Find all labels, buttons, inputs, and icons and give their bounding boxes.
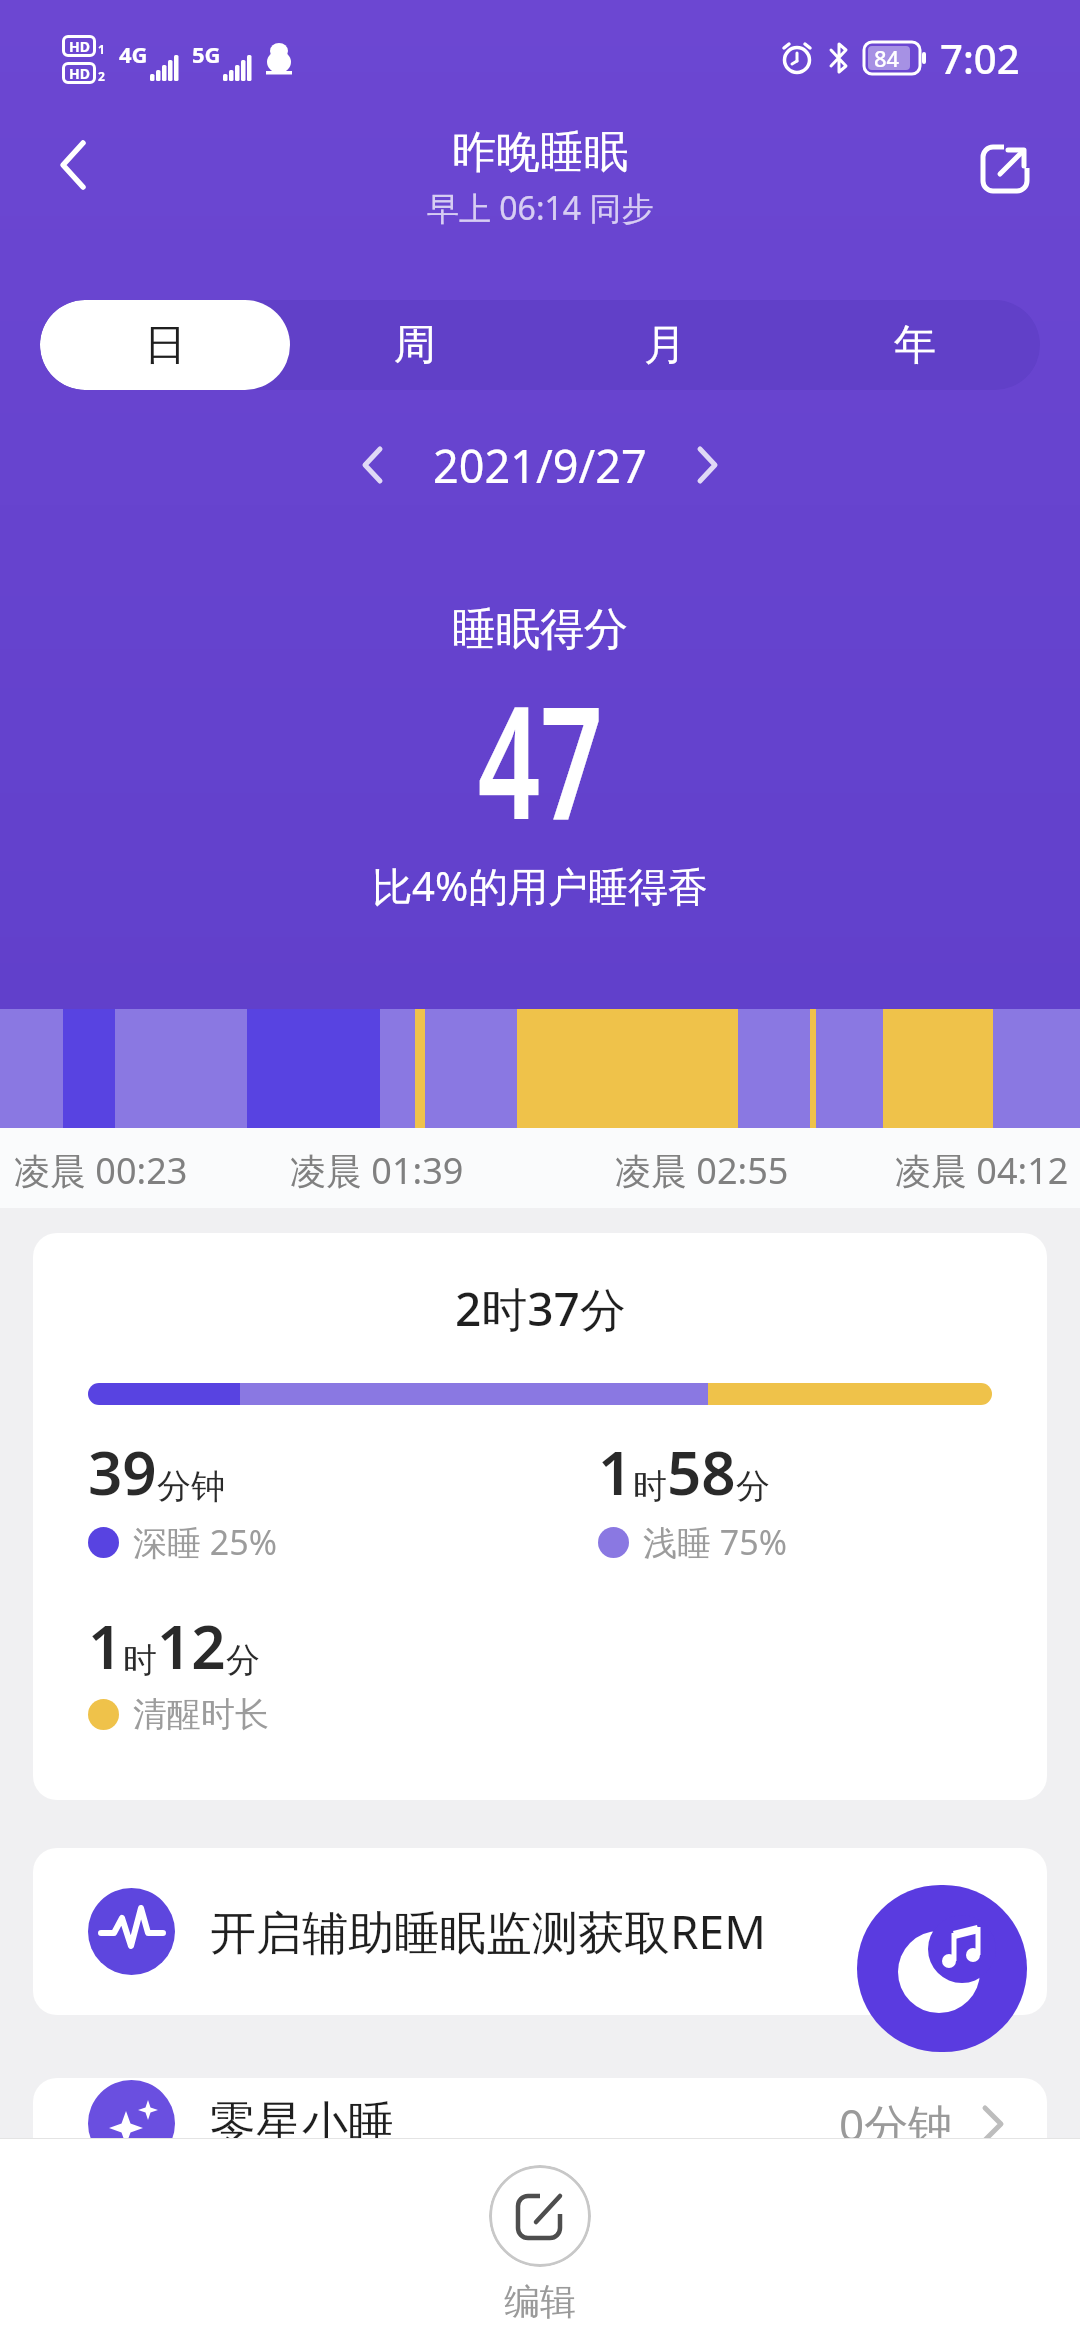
button[interactable]	[343, 435, 403, 495]
staticText: 月	[644, 319, 686, 372]
staticText: 时	[123, 1639, 157, 1682]
staticText: 凌晨 01:39	[290, 1146, 464, 1195]
staticText: 分	[736, 1465, 770, 1508]
staticText: 早上 06:14 同步	[427, 186, 654, 230]
button[interactable]: 零星小睡	[33, 2078, 1047, 2258]
button[interactable]	[489, 2165, 591, 2267]
staticText: 1	[98, 41, 105, 57]
staticText: 1	[88, 1605, 123, 1687]
staticText: 2	[98, 68, 105, 84]
staticText: 日	[144, 319, 186, 372]
button[interactable]	[677, 435, 737, 495]
staticText: 5G	[192, 39, 221, 69]
staticText: 深睡 25%	[133, 1519, 277, 1565]
staticText: 比4%的用户睡得香	[372, 858, 709, 913]
button[interactable]: 月	[540, 300, 790, 390]
staticText: 12	[157, 1605, 226, 1687]
staticText: 年	[894, 319, 936, 372]
staticText: 睡眠得分	[452, 602, 628, 657]
staticText: 2021/9/27	[433, 435, 647, 496]
button[interactable]: 开启辅助睡眠监测获取REM	[33, 1848, 1047, 2015]
button[interactable]	[857, 1885, 1027, 2052]
staticText: 2时37分	[455, 1277, 626, 1340]
staticText: 7:02	[940, 31, 1020, 85]
staticText: 零星小睡	[210, 2095, 394, 2153]
staticText: 分钟	[157, 1465, 225, 1508]
staticText: 4G	[119, 39, 148, 69]
staticText: 84	[874, 43, 900, 73]
staticText: 浅睡 75%	[643, 1519, 787, 1565]
staticText: 凌晨 04:12	[895, 1146, 1069, 1195]
staticText: 47	[478, 652, 603, 857]
button[interactable]	[40, 130, 110, 200]
staticText: 编辑	[504, 2279, 576, 2324]
staticText: 58	[667, 1431, 736, 1513]
staticText: 清醒时长	[133, 1693, 269, 1736]
button[interactable]: 年	[790, 300, 1040, 390]
staticText: 39	[88, 1431, 157, 1513]
staticText: 0分钟	[839, 2094, 953, 2154]
button[interactable]: 周	[290, 300, 540, 390]
staticText: 昨晚睡眠	[452, 125, 628, 180]
button[interactable]	[970, 132, 1042, 204]
button[interactable]: 日	[40, 300, 290, 390]
staticText: 凌晨 00:23	[14, 1146, 188, 1195]
staticText: 凌晨 02:55	[615, 1146, 789, 1195]
staticText: HD	[69, 37, 90, 56]
staticText: 1	[598, 1431, 633, 1513]
staticText: 开启辅助睡眠监测获取REM	[210, 1900, 766, 1963]
staticText: HD	[69, 64, 90, 83]
staticText: 时	[633, 1465, 667, 1508]
staticText: 周	[394, 319, 436, 372]
staticText: 分	[226, 1639, 260, 1682]
